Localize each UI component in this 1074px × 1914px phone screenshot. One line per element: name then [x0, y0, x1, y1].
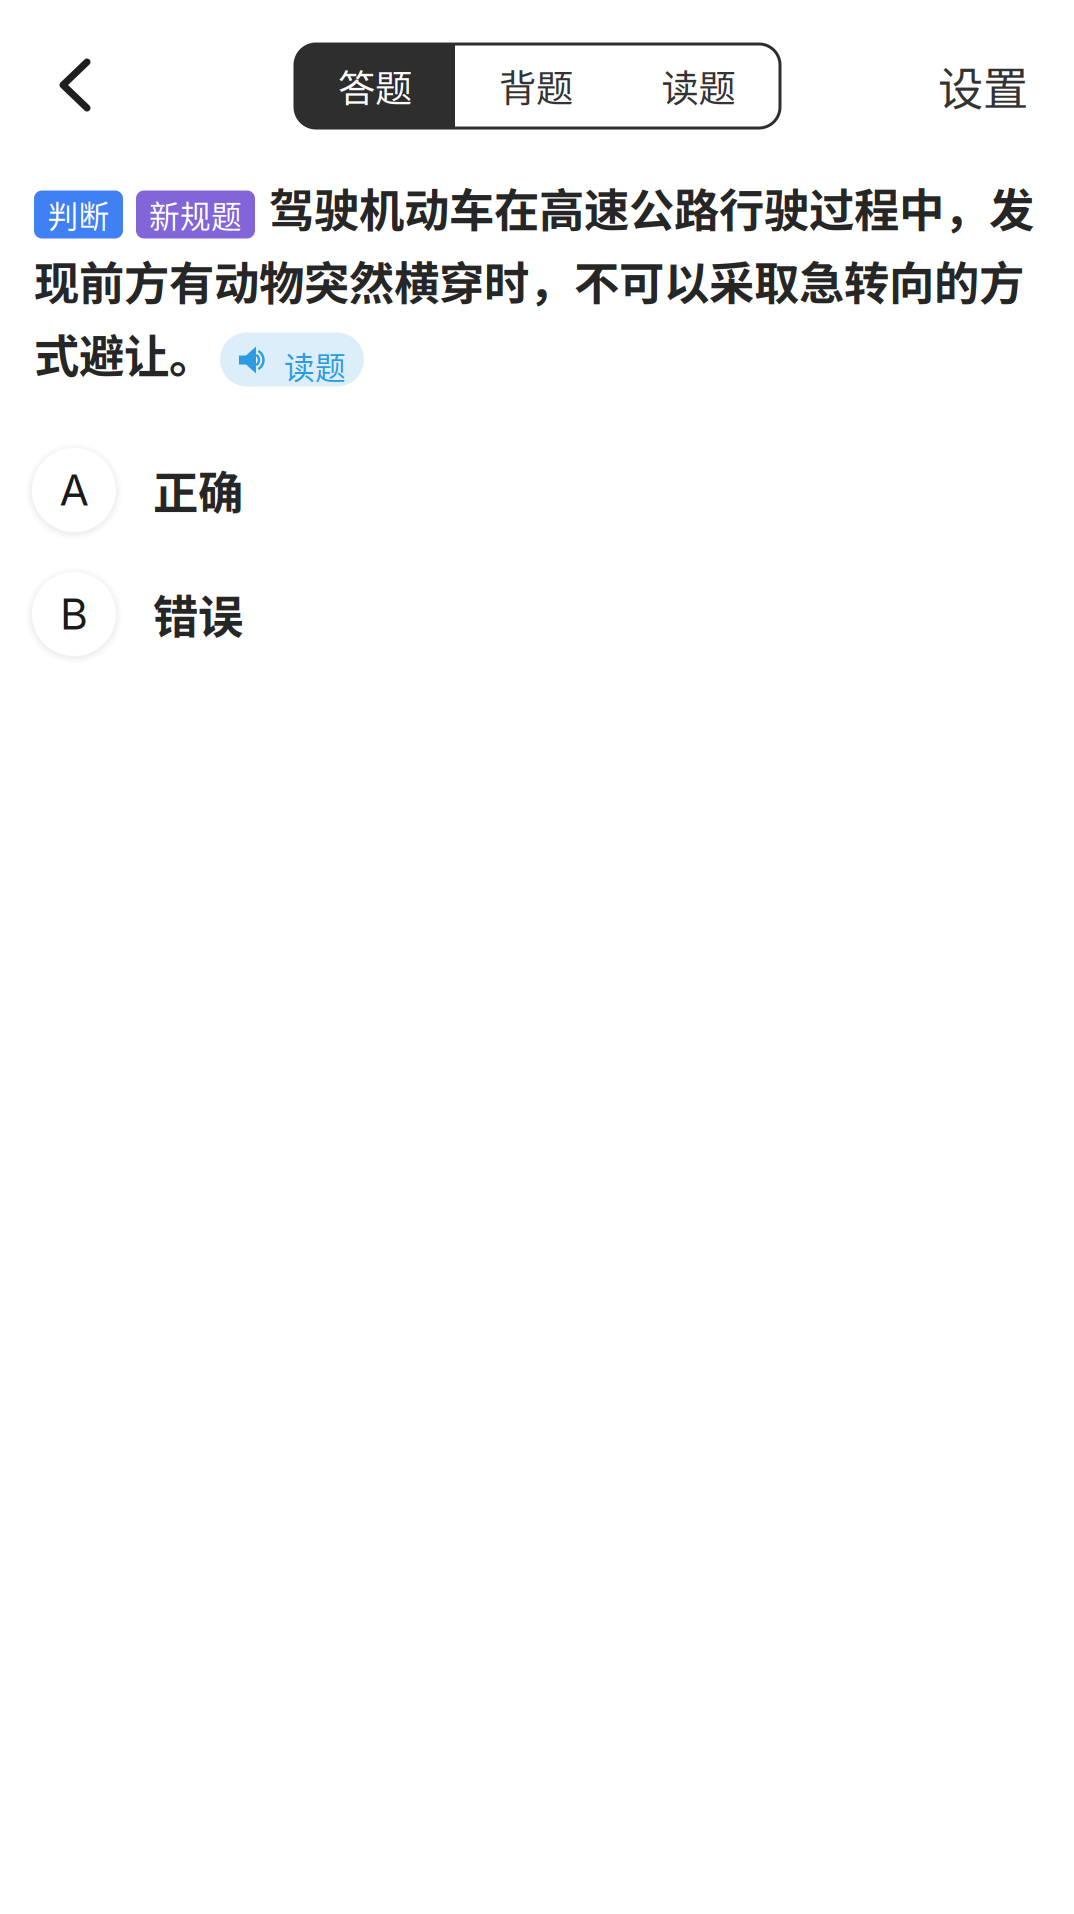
button[interactable]: 读题 — [220, 332, 364, 386]
staticText: 背题 — [499, 59, 573, 113]
staticText: 错误 — [153, 581, 243, 647]
staticText: 新规题 — [149, 192, 242, 237]
staticText: A — [59, 464, 88, 516]
button[interactable]: A — [0, 428, 1074, 552]
button[interactable]: 背题 — [455, 44, 617, 128]
button[interactable]: 设置 — [903, 21, 1063, 151]
staticText: 设置 — [938, 53, 1028, 119]
staticText: 驾驶机动车在高速公路行驶过程中，发 — [269, 175, 1034, 240]
staticText: 读题 — [284, 343, 346, 388]
staticText: 判断 — [47, 192, 109, 237]
button[interactable]: 读题 — [617, 44, 780, 128]
button[interactable]: 答题 — [295, 44, 455, 128]
staticText: 读题 — [661, 59, 735, 113]
staticText: 正确 — [153, 457, 243, 523]
staticText: B — [60, 588, 88, 640]
button[interactable]: B — [0, 552, 1074, 676]
button[interactable]: Back — [0, 0, 150, 140]
staticText: 答题 — [338, 59, 412, 113]
staticText: 现前方有动物突然横穿时，不可以采取急转向的方 — [34, 248, 1024, 313]
staticText: 式避让。 — [34, 321, 214, 386]
